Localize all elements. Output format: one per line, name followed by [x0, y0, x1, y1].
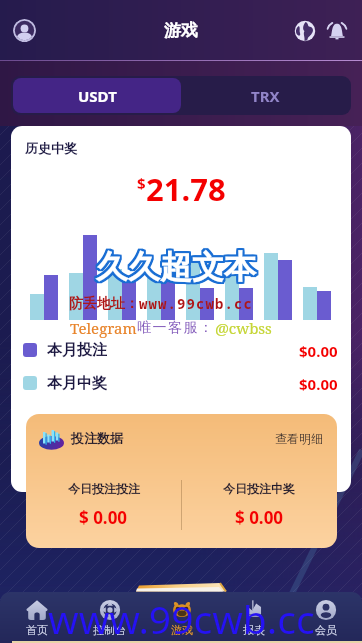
staticText: 本月投注	[47, 341, 107, 359]
button[interactable]: Profile	[13, 19, 36, 42]
staticText: 历史中奖	[25, 140, 77, 156]
staticText: 久久超文本	[96, 249, 256, 289]
staticText: 唯一客服：	[137, 319, 215, 337]
staticText: $0.00	[299, 374, 338, 392]
staticText: www.99cwb.cc	[139, 294, 253, 313]
staticText: 久久超文本	[98, 246, 258, 286]
staticText: 久久超文本	[98, 249, 258, 289]
button[interactable]: TRX	[181, 78, 349, 113]
button[interactable]: Notifications	[326, 20, 348, 42]
button[interactable]: 控制台	[73, 592, 146, 643]
staticText: 投注数据	[71, 430, 123, 446]
staticText: Telegram	[70, 318, 137, 338]
staticText: 今日投注中奖	[223, 481, 295, 496]
staticText: 久久超文本	[97, 248, 257, 288]
staticText: 久久超文本	[97, 245, 257, 285]
staticText: 久久超文本	[94, 246, 254, 286]
staticText: 久久超文本	[96, 245, 256, 285]
staticText: 久久超文本	[98, 248, 258, 288]
button[interactable]: 报表	[218, 592, 290, 643]
staticText: 久久超文本	[96, 247, 256, 287]
staticText: 防丢地址：	[69, 295, 139, 313]
staticText: 控制台	[93, 623, 126, 637]
staticText: $	[137, 173, 146, 193]
staticText: 久久超文本	[98, 245, 258, 285]
staticText: 久久超文本	[94, 248, 254, 288]
button[interactable]: 游戏	[146, 592, 218, 643]
staticText: 本月中奖	[47, 374, 107, 392]
staticText: 久久超文本	[95, 249, 255, 289]
staticText: 久久超文本	[97, 247, 257, 287]
staticText: 久久超文本	[98, 247, 258, 287]
staticText: 久久超文本	[95, 248, 255, 288]
button[interactable]: 会员	[290, 592, 362, 643]
staticText: 今日投注投注	[68, 481, 140, 496]
staticText: $ 0.00	[235, 506, 284, 529]
staticText: TRX	[251, 86, 280, 106]
staticText: 久久超文本	[94, 249, 254, 289]
staticText: $ 0.00	[79, 506, 128, 529]
staticText: 久久超文本	[97, 249, 257, 289]
staticText: 21.78	[146, 168, 226, 210]
staticText: USDT	[78, 86, 117, 106]
staticText: 久久超文本	[94, 247, 254, 287]
staticText: $0.00	[299, 341, 338, 359]
staticText: 查看明细	[275, 431, 323, 446]
staticText: 久久超文本	[95, 245, 255, 285]
staticText: @cwbss	[215, 318, 272, 338]
staticText: 首页	[26, 623, 48, 637]
staticText: 久久超文本	[96, 246, 256, 286]
staticText: 久久超文本	[95, 247, 255, 287]
staticText: 久久超文本	[97, 246, 257, 286]
button[interactable]: USDT	[13, 78, 181, 113]
staticText: 游戏	[164, 20, 198, 41]
button[interactable]: 查看明细	[275, 431, 323, 446]
staticText: www.99cwb.cc	[48, 592, 315, 643]
staticText: 久久超文本	[95, 246, 255, 286]
staticText: 久久超文本	[94, 245, 254, 285]
button[interactable]: 首页	[0, 592, 73, 643]
staticText: 久久超文本	[96, 248, 256, 288]
button[interactable]: Language	[294, 20, 316, 42]
staticText: 会员	[315, 623, 337, 637]
staticText: 报表	[243, 623, 265, 637]
staticText: 游戏	[171, 623, 193, 637]
